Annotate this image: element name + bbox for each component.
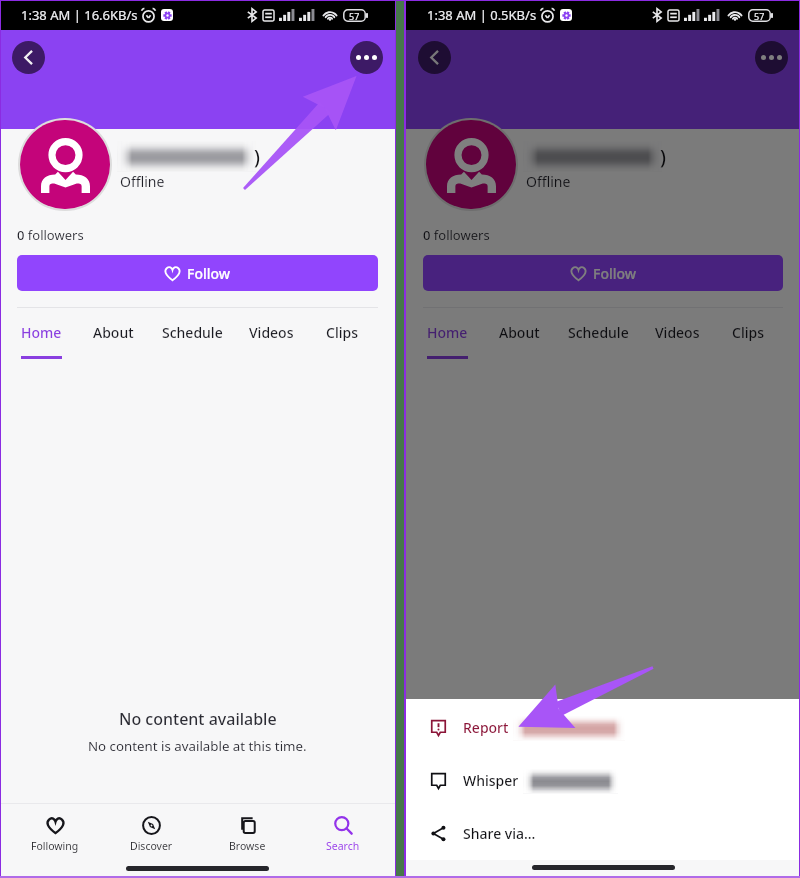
button[interactable]: About [499,323,540,359]
staticText: 57 [349,10,360,22]
staticText: Discover [130,839,173,853]
staticText: Offline [120,172,165,191]
staticText: ) [254,144,260,170]
button[interactable]: Report [406,701,800,754]
button[interactable]: Browse [199,816,295,853]
staticText: Share via... [463,824,536,843]
staticText: Home [21,323,62,342]
button[interactable]: Discover [508,816,604,853]
button[interactable]: More options [755,41,788,74]
button[interactable]: Home [21,323,62,359]
staticText: Home [427,323,468,342]
staticText: Search [326,839,360,853]
button[interactable]: Home [427,323,468,359]
staticText: Videos [655,323,700,342]
staticText: 1:38 AM | 0.5KB/s [427,6,537,24]
button[interactable]: Videos [249,323,294,359]
button[interactable]: Follow [17,255,378,291]
staticText: No content is available at this time. [494,737,713,755]
button[interactable]: Videos [655,323,700,359]
staticText: Report [463,718,509,737]
button[interactable]: Clips [326,323,358,359]
staticText: Following [437,839,485,853]
staticText: No content available [525,708,683,730]
staticText: Schedule [162,323,223,342]
staticText: 1:38 AM | 16.6KB/s [21,6,138,24]
staticText: About [93,323,134,342]
button[interactable]: Back [418,41,451,74]
staticText: Offline [526,172,571,191]
button[interactable]: 0 followers [17,226,84,244]
button[interactable]: Back [12,41,45,74]
button[interactable]: More options [350,41,383,74]
staticText: Following [31,839,79,853]
staticText: 57 [754,10,765,22]
staticText: Follow [187,264,231,283]
staticText: Schedule [568,323,629,342]
staticText: Clips [326,323,358,342]
button[interactable]: Discover [103,816,199,853]
staticText: About [499,323,540,342]
button[interactable]: Whisper [406,754,800,807]
staticText: Videos [249,323,294,342]
staticText: No content available [119,708,277,730]
button[interactable]: 0 followers [423,226,490,244]
button[interactable]: Schedule [162,323,223,359]
button[interactable]: Share via... [406,807,800,860]
staticText: ) [660,144,666,170]
staticText: Clips [732,323,764,342]
button[interactable]: Following [413,816,508,853]
button[interactable]: Search [295,816,391,853]
button[interactable]: Following [7,816,103,853]
button[interactable]: Schedule [568,323,629,359]
staticText: No content is available at this time. [88,737,307,755]
button[interactable]: Clips [732,323,764,359]
button[interactable]: About [93,323,134,359]
button[interactable]: Follow [423,255,783,291]
staticText: Follow [593,264,637,283]
staticText: Whisper [463,771,519,790]
staticText: Browse [229,839,266,853]
